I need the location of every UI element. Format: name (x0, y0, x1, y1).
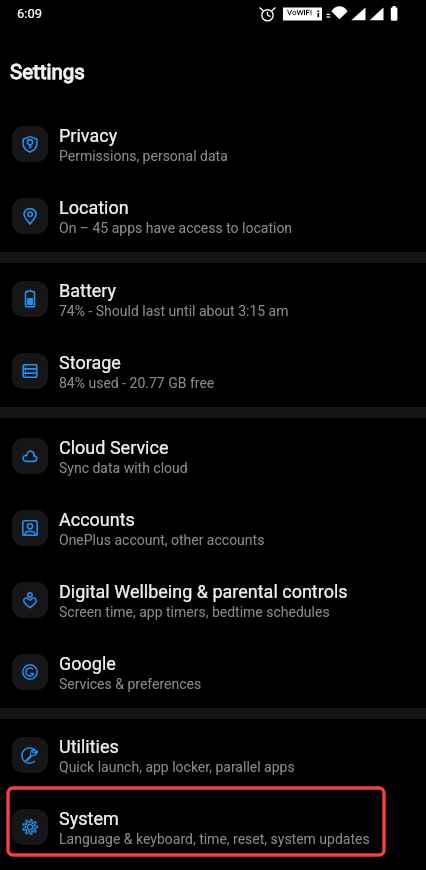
staticText: Settings (10, 60, 85, 84)
staticText: 84% used - 20.77 GB free (59, 375, 215, 391)
staticText: 6:09 (17, 6, 43, 21)
staticText: Services & preferences (59, 676, 202, 692)
button[interactable]: Privacy (0, 108, 426, 180)
staticText: 74% - Should last until about 3:15 am (59, 303, 289, 319)
staticText: Quick launch, app locker, parallel apps (59, 759, 295, 775)
button[interactable]: Utilities (0, 719, 426, 791)
button[interactable]: Google (0, 636, 426, 708)
button[interactable]: Accounts (0, 492, 426, 564)
staticText: Utilities (59, 736, 119, 757)
button[interactable]: System (0, 791, 426, 863)
button[interactable]: Storage (0, 335, 426, 407)
staticText: System (59, 808, 119, 829)
staticText: Google (59, 653, 116, 674)
staticText: Accounts (59, 509, 135, 530)
staticText: Permissions, personal data (59, 148, 228, 164)
staticText: OnePlus account, other accounts (59, 532, 265, 548)
button[interactable]: Battery (0, 263, 426, 335)
staticText: Screen time, app timers, bedtime schedul… (59, 604, 330, 620)
button[interactable]: Location (0, 180, 426, 252)
staticText: Cloud Service (59, 437, 169, 458)
staticText: Digital Wellbeing & parental controls (59, 581, 348, 602)
staticText: Location (59, 197, 129, 218)
button[interactable]: Digital Wellbeing & parental controls (0, 564, 426, 636)
staticText: Language & keyboard, time, reset, system… (59, 831, 370, 847)
staticText: Storage (59, 352, 121, 373)
staticText: On – 45 apps have access to location (59, 220, 293, 236)
staticText: Privacy (59, 125, 118, 146)
staticText: Battery (59, 280, 117, 301)
button[interactable]: Cloud Service (0, 420, 426, 492)
staticText: Sync data with cloud (59, 460, 188, 476)
staticText: VoWiFi (287, 8, 312, 17)
